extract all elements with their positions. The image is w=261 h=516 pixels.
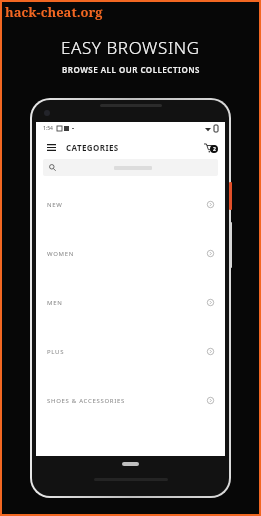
- button[interactable]: NEW: [36, 180, 225, 229]
- button[interactable]: MEN: [36, 278, 225, 327]
- staticText: MEN: [47, 299, 63, 307]
- button[interactable]: WOMEN: [36, 229, 225, 278]
- button[interactable]: Menu: [43, 139, 59, 155]
- staticText: CATEGORIES: [66, 142, 119, 153]
- staticText: WOMEN: [47, 250, 75, 258]
- staticText: BROWSE ALL OUR COLLECTIONS: [62, 64, 200, 75]
- button[interactable]: SHOES & ACCESSORIES: [36, 376, 225, 425]
- button[interactable]: Shopping cart, 2 items: [199, 137, 219, 157]
- button[interactable]: Search: [43, 159, 218, 176]
- staticText: hack-cheat.org: [5, 3, 103, 21]
- button[interactable]: PLUS: [36, 327, 225, 376]
- staticText: 2: [213, 146, 216, 153]
- staticText: PLUS: [47, 348, 65, 356]
- staticText: SHOES & ACCESSORIES: [47, 397, 126, 405]
- staticText: NEW: [47, 201, 63, 209]
- staticText: 1:54: [43, 125, 53, 132]
- staticText: EASY BROWSING: [61, 36, 200, 59]
